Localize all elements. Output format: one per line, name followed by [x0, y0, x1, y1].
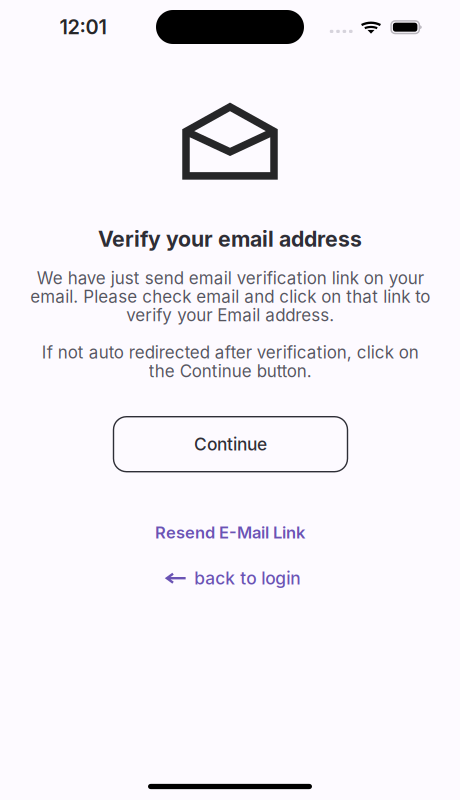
button[interactable]: Continue	[113, 417, 347, 472]
staticText: Resend E-Mail Link	[155, 522, 305, 542]
staticText: Continue	[194, 434, 267, 455]
staticText: Verify your email address	[98, 226, 362, 252]
button[interactable]: Resend E-Mail Link	[149, 516, 311, 548]
staticText: 12:01	[59, 15, 106, 39]
staticText: We have just send email verification lin…	[30, 268, 430, 381]
staticText: back to login	[194, 568, 300, 589]
button[interactable]: back to login	[160, 562, 306, 595]
